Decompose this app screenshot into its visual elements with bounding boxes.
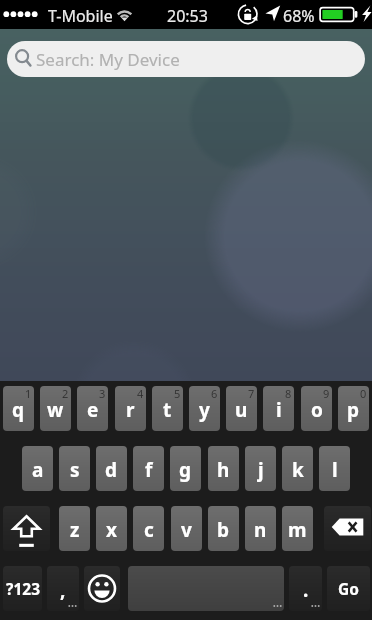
button[interactable]: Search: My Device [7,41,365,77]
staticText: f [145,457,153,483]
button[interactable]: q [3,386,34,431]
button[interactable]: f [133,446,164,491]
button[interactable]: emoji [84,566,120,611]
staticText: T-Mobile [48,5,113,27]
button[interactable]: Go [327,566,370,611]
button[interactable]: , [47,566,79,611]
staticText: b [217,517,230,543]
button[interactable]: j [245,446,276,491]
button[interactable]: g [170,446,201,491]
staticText: 3 [99,386,106,401]
staticText: v [181,517,192,543]
button[interactable]: m [282,506,313,551]
button[interactable]: w [40,386,71,431]
staticText: k [292,457,304,483]
staticText: ?123 [6,578,40,599]
staticText: y [199,397,210,423]
button[interactable]: shift [3,506,50,551]
staticText: Go [338,578,359,599]
button[interactable]: x [96,506,127,551]
button[interactable]: p [338,386,369,431]
staticText: 68% [283,5,315,27]
button[interactable] [128,566,284,611]
staticText: j [258,457,264,483]
staticText: 7 [248,386,255,401]
button[interactable]: n [245,506,276,551]
button[interactable]: v [171,506,202,551]
button[interactable]: t [152,386,183,431]
button[interactable]: b [208,506,239,551]
staticText: 1 [25,386,32,401]
staticText: z [70,517,80,543]
staticText: i [276,397,282,423]
staticText: h [217,457,230,483]
staticText: 4 [137,386,144,401]
button[interactable]: u [226,386,257,431]
button[interactable]: d [96,446,127,491]
button[interactable]: i [263,386,294,431]
staticText: 8 [285,386,292,401]
staticText: u [235,397,248,423]
staticText: d [105,457,118,483]
button[interactable]: s [59,446,90,491]
button[interactable]: k [282,446,313,491]
staticText: . [303,577,309,603]
staticText: a [32,457,44,483]
staticText: n [254,517,267,543]
staticText: x [106,517,117,543]
button[interactable]: z [59,506,90,551]
staticText: s [70,457,80,483]
staticText: w [47,397,64,423]
button[interactable]: . [289,566,322,611]
staticText: g [179,457,192,483]
button[interactable]: l [319,446,350,491]
staticText: e [87,397,99,423]
button[interactable]: e [77,386,108,431]
button[interactable]: a [22,446,53,491]
staticText: 9 [323,386,330,401]
button[interactable]: h [208,446,239,491]
staticText: m [288,517,307,543]
staticText: , [60,577,66,603]
staticText: 5 [174,386,181,401]
staticText: t [163,397,172,423]
staticText: r [126,397,135,423]
staticText: q [12,397,25,423]
staticText: 0 [360,386,367,401]
staticText: 6 [211,386,218,401]
staticText: Search: My Device [36,48,180,71]
staticText: 20:53 [167,5,208,27]
staticText: c [144,517,154,543]
button[interactable]: y [189,386,220,431]
button[interactable]: r [115,386,146,431]
staticText: o [311,397,323,423]
staticText: 2 [62,386,69,401]
button[interactable]: o [301,386,332,431]
button[interactable]: back [324,506,371,551]
staticText: l [332,457,338,483]
staticText: p [347,397,360,423]
button[interactable]: ?123 [3,566,42,611]
button[interactable]: c [133,506,164,551]
